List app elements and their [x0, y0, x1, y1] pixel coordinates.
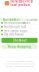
button[interactable]: Keep shopping — [1, 44, 37, 49]
staticText: HarvestBox fresh local produce — [10, 0, 33, 7]
staticText: Checkout — [12, 39, 26, 42]
button[interactable]: Checkout — [1, 38, 37, 43]
staticText: Free-range eggs — [4, 29, 27, 32]
staticText: Keep shopping — [8, 45, 31, 48]
staticText: Heirloom tomatoes — [4, 21, 30, 25]
staticText: Your basket — [2, 18, 19, 21]
staticText: Prices include local tax. Delivery windo… — [6, 61, 33, 62]
staticText: Sourdough loaf — [4, 25, 26, 28]
staticText: Oat milk barista — [4, 33, 23, 36]
staticText: Questions? Reply to the confirmation ema… — [6, 66, 33, 67]
staticText: 4 items — [26, 18, 36, 21]
